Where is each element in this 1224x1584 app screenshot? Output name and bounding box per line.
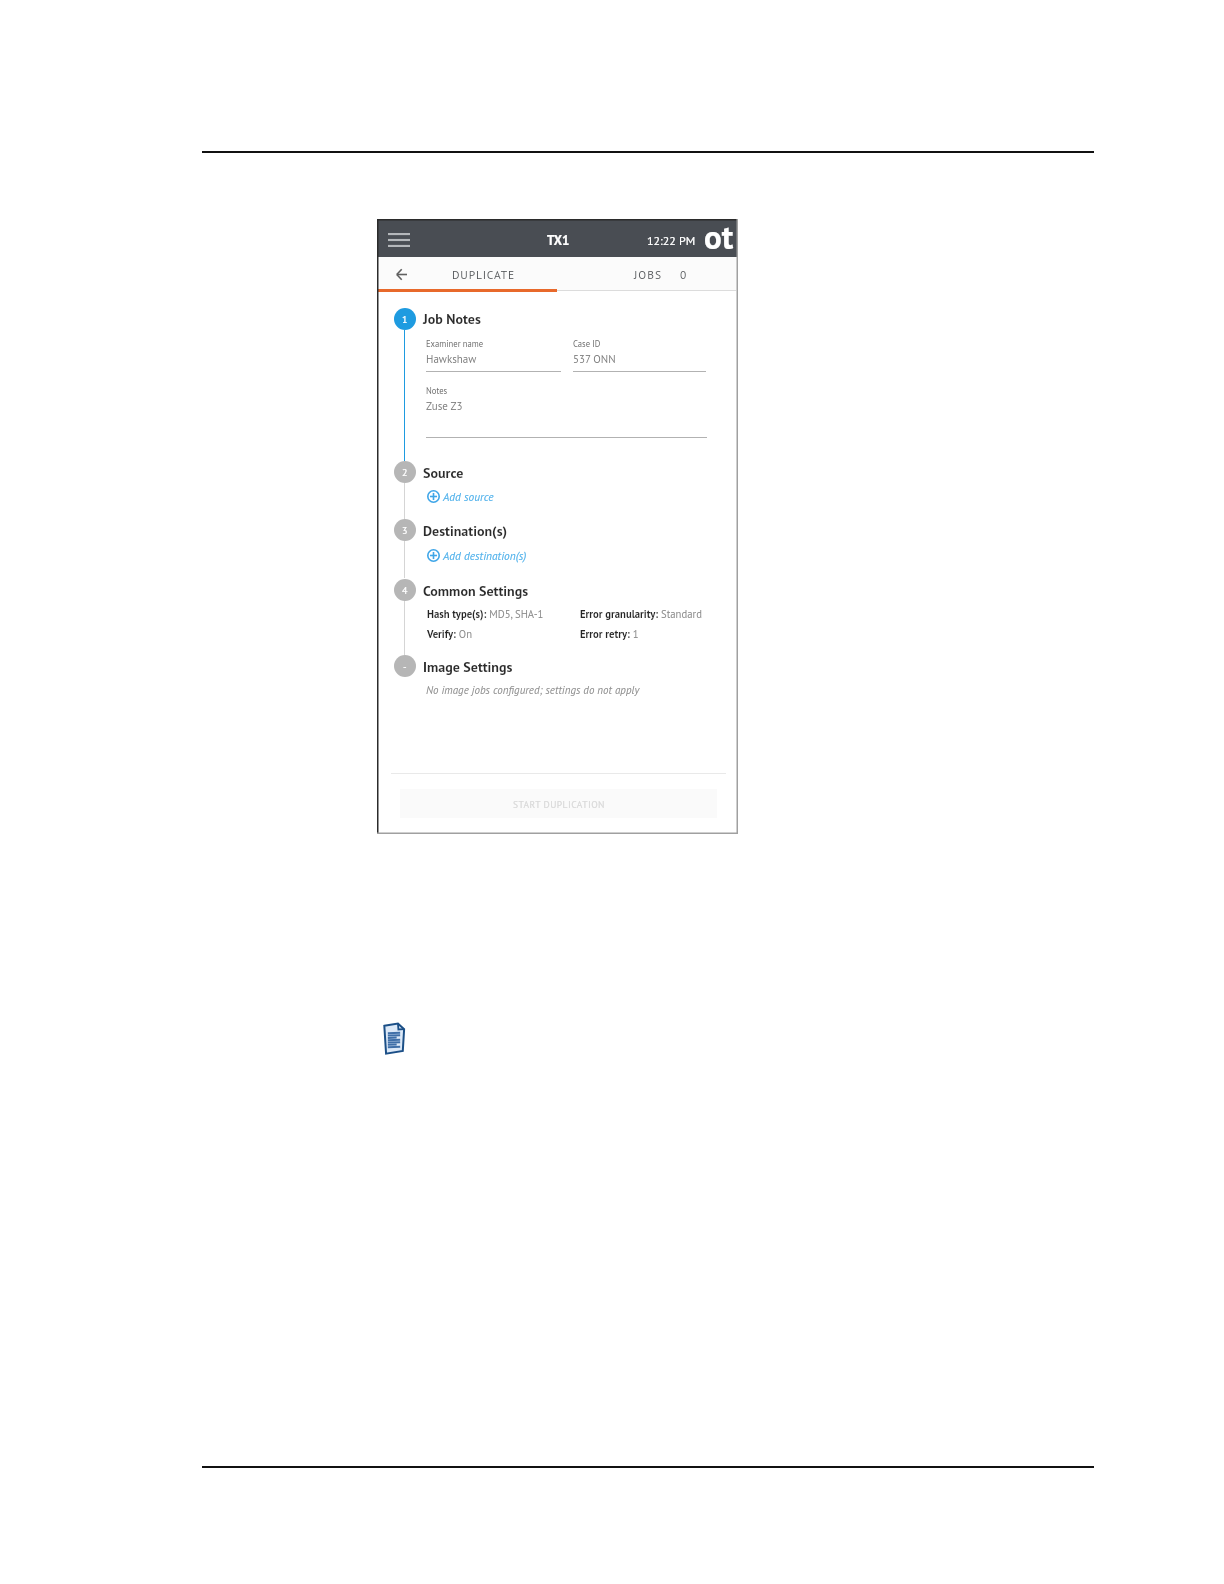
button[interactable]: Add destination(s) [425, 547, 615, 563]
staticText: 12:22 PM [647, 233, 696, 249]
staticText: 0 [680, 267, 687, 282]
staticText: No image jobs configured; settings do no… [426, 683, 640, 697]
staticText: TX1 [547, 232, 570, 249]
staticText: JOBS [634, 267, 662, 282]
staticText: 537 ONN [573, 352, 616, 366]
staticText: Source [423, 464, 464, 482]
button[interactable]: Open navigation menu [384, 228, 413, 252]
staticText: ot [704, 215, 734, 252]
staticText: 2 [402, 466, 408, 479]
staticText: Examiner name [426, 338, 484, 349]
staticText: Add destination(s) [443, 548, 527, 563]
staticText: 4 [402, 584, 408, 597]
button[interactable]: Back [377, 257, 557, 291]
staticText: Zuse Z3 [426, 399, 463, 413]
staticText: Image Settings [423, 658, 513, 676]
staticText: 3 [402, 524, 408, 537]
other: Back [391, 264, 412, 285]
button[interactable]: JOBS [557, 257, 738, 291]
staticText: Hawkshaw [426, 352, 477, 366]
staticText: - [403, 660, 407, 673]
staticText: Hash type(s): MD5, SHA-1 [427, 607, 544, 621]
staticText: Job Notes [423, 310, 481, 328]
staticText: START DUPLICATION [513, 798, 605, 810]
staticText: Case ID [573, 338, 601, 349]
staticText: Destination(s) [423, 522, 508, 540]
staticText: Error granularity: Standard [580, 607, 702, 621]
staticText: Notes [426, 385, 448, 396]
staticText: Add source [443, 489, 494, 504]
staticText: Error retry: 1 [580, 627, 639, 641]
staticText: DUPLICATE [452, 267, 515, 282]
staticText: Verify: On [427, 627, 472, 641]
button[interactable]: Add source [425, 488, 615, 504]
staticText: 1 [402, 313, 408, 326]
button[interactable]: START DUPLICATION [400, 789, 717, 818]
staticText: Common Settings [423, 582, 529, 600]
